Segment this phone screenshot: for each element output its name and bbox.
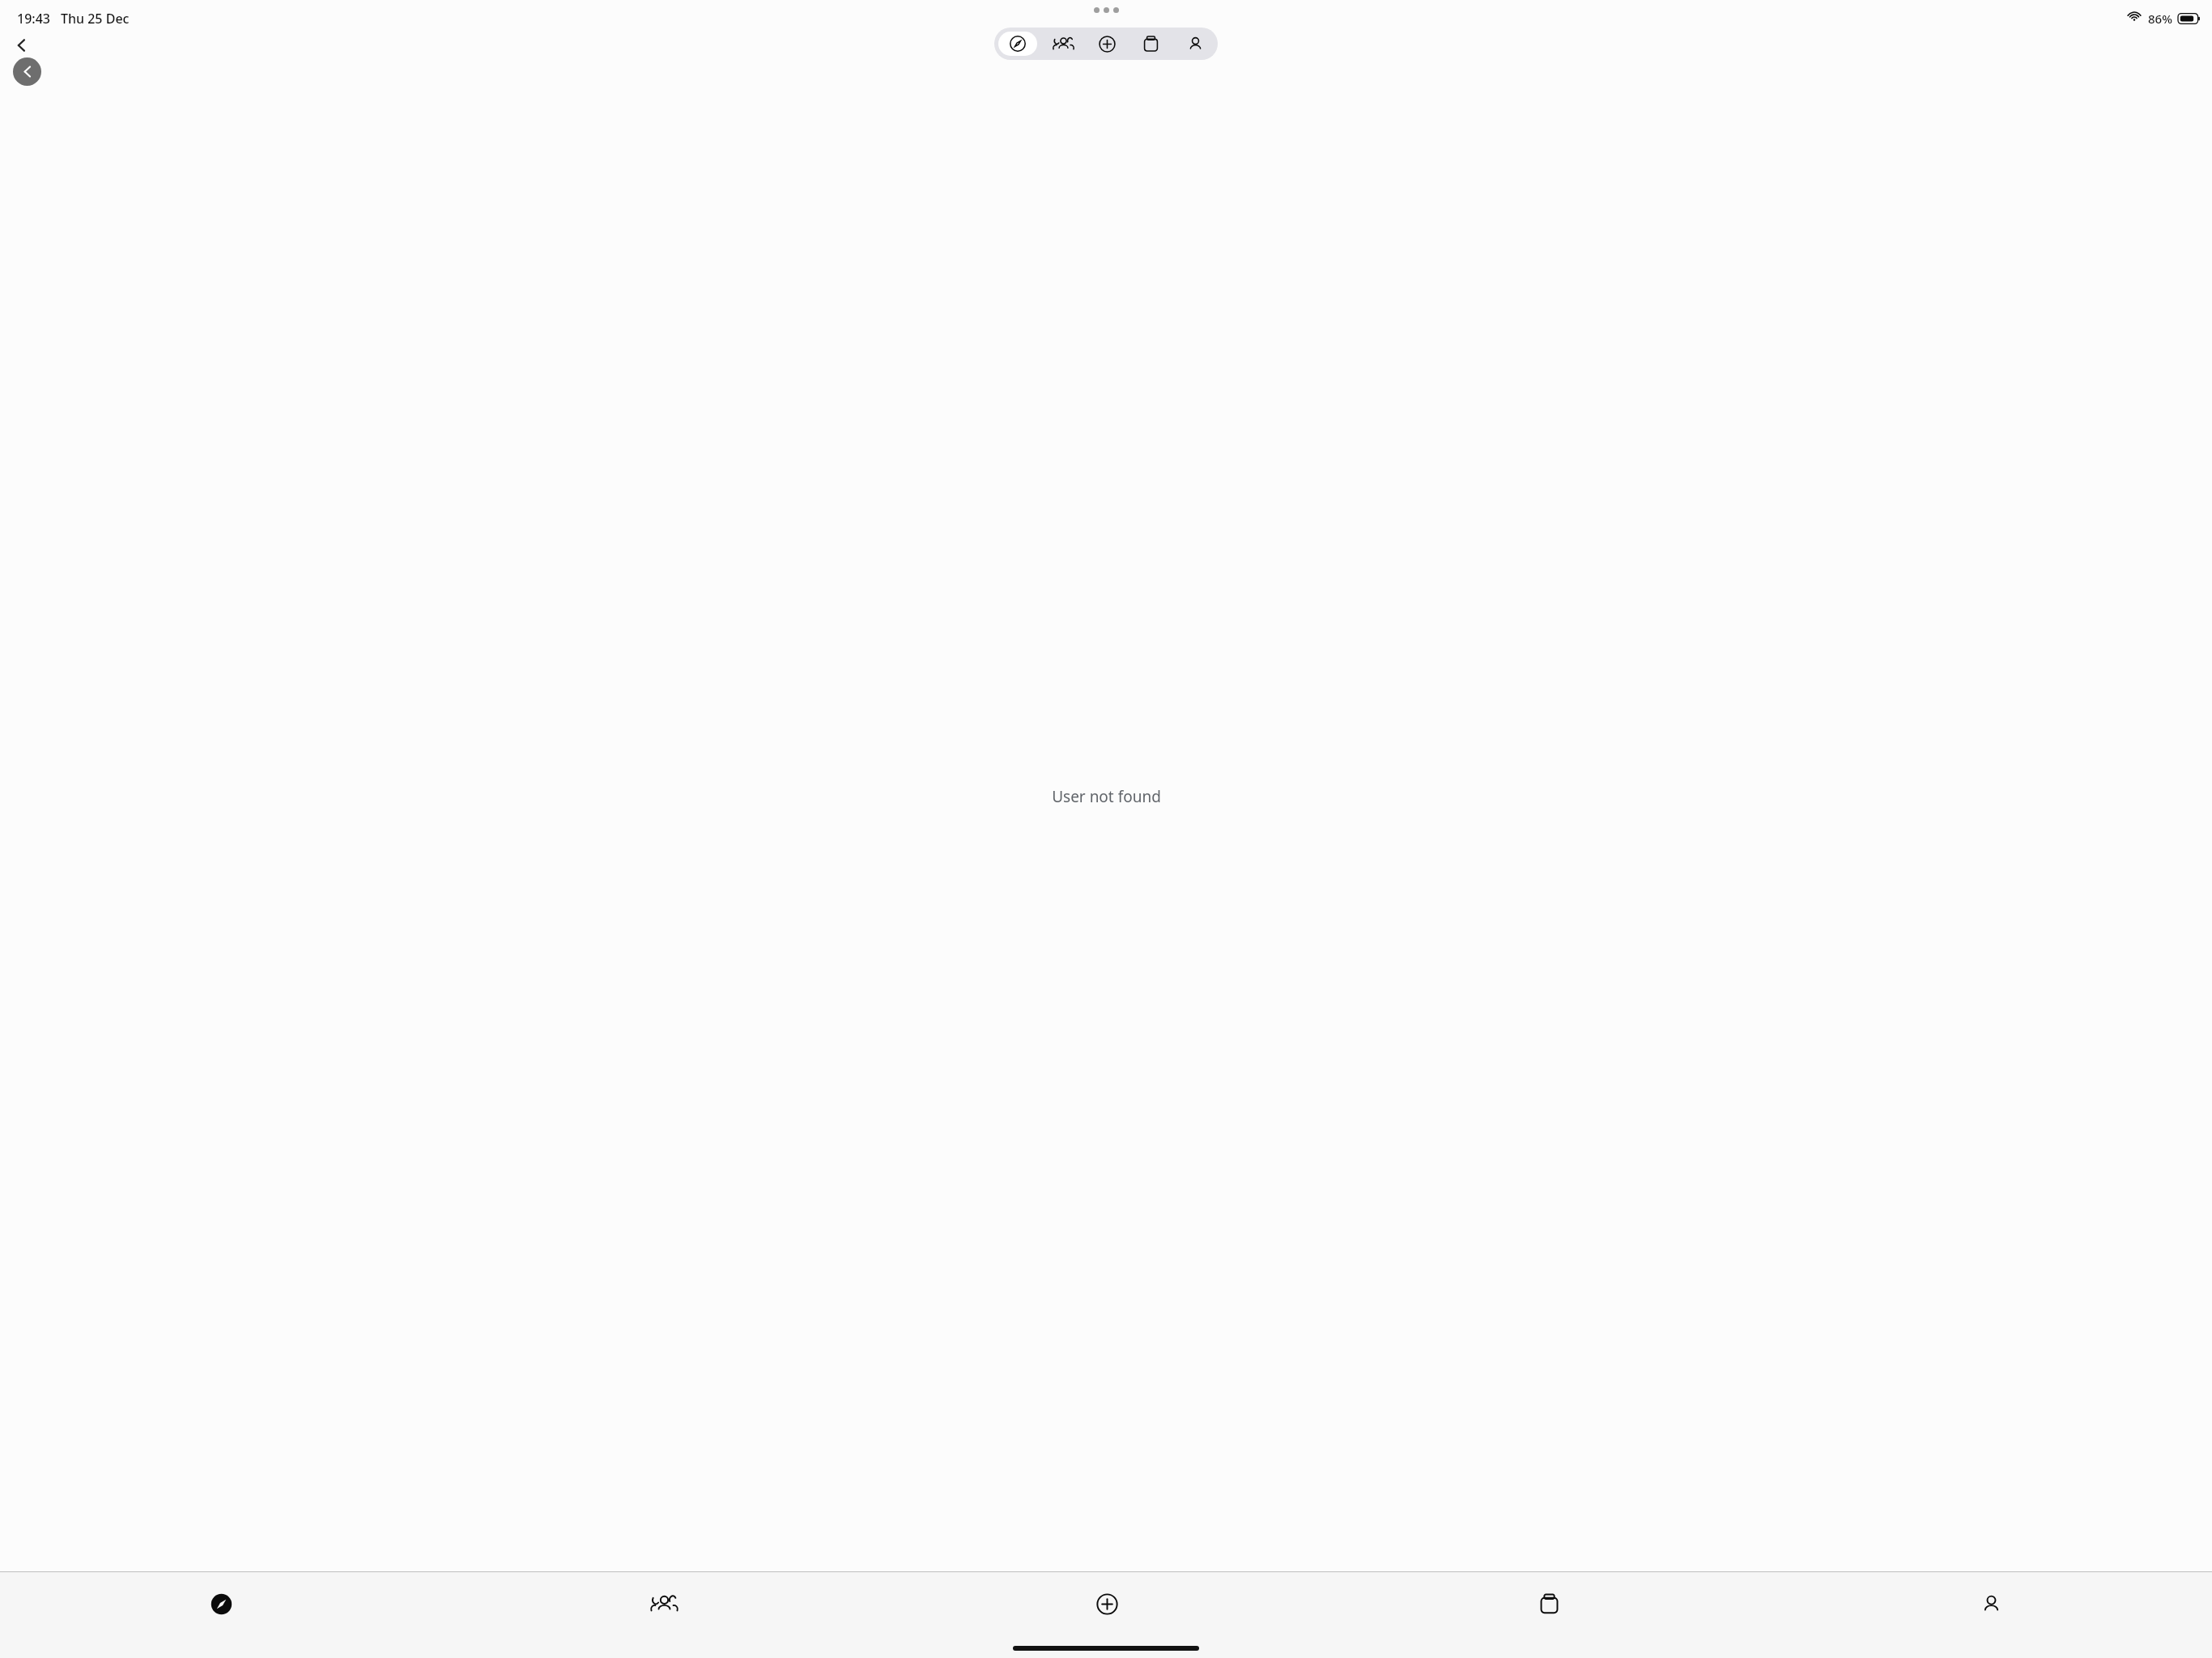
button[interactable]: Profile: [1770, 1580, 2212, 1627]
button[interactable]: Back: [13, 57, 41, 86]
staticText: 19:43: [17, 10, 50, 28]
staticText: User not found: [1052, 786, 1161, 807]
staticText: Thu 25 Dec: [61, 10, 130, 28]
button[interactable]: Bag: [1129, 28, 1173, 60]
button[interactable]: Create: [886, 1580, 1328, 1627]
button[interactable]: Create: [1085, 28, 1129, 60]
button[interactable]: People: [1041, 28, 1085, 60]
button[interactable]: Bag: [1328, 1580, 1770, 1627]
button[interactable]: System back: [6, 31, 36, 60]
button[interactable]: People: [443, 1580, 886, 1627]
staticText: 86%: [2148, 11, 2172, 27]
button[interactable]: Discover: [998, 32, 1037, 56]
button[interactable]: Discover: [0, 1580, 443, 1627]
button[interactable]: Profile: [1173, 28, 1218, 60]
